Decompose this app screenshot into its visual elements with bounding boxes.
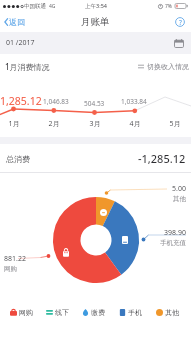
staticText: 手机	[128, 308, 142, 317]
button[interactable]: 其他	[149, 300, 186, 325]
button[interactable]: 缴费	[75, 300, 112, 325]
staticText: 总消费	[6, 154, 30, 164]
button[interactable]: 返回	[0, 14, 29, 30]
staticText: 网购	[19, 308, 33, 317]
staticText: 其他	[173, 195, 186, 203]
staticText: 2月	[48, 119, 60, 129]
staticText: ?	[179, 18, 182, 27]
staticText: 4G	[49, 3, 56, 10]
staticText: 中国联通	[24, 3, 46, 10]
staticText: 手机充值	[160, 239, 186, 247]
button[interactable]: 切换收入情况	[132, 58, 191, 75]
staticText: 1月	[8, 119, 20, 129]
staticText: 5月	[169, 119, 181, 129]
staticText: 7%	[165, 3, 173, 10]
staticText: 4月	[129, 119, 141, 129]
button[interactable]: Pick month	[167, 34, 191, 53]
staticText: 881.22	[4, 254, 26, 264]
staticText: 1,033.84	[121, 97, 147, 106]
staticText: 其他	[165, 308, 179, 317]
staticText: 3月	[89, 119, 101, 129]
staticText: 线下	[55, 308, 69, 317]
staticText: 01 /2017	[6, 38, 35, 48]
staticText: -1,285.12	[138, 151, 186, 166]
staticText: 月账单	[81, 16, 110, 28]
staticText: 398.90	[164, 228, 186, 238]
staticText: 缴费	[91, 308, 105, 317]
button[interactable]: 手机	[112, 300, 149, 325]
button[interactable]: 线下	[39, 300, 75, 325]
staticText: 网购	[4, 265, 17, 273]
staticText: 5.00	[172, 184, 186, 194]
staticText: 返回	[9, 17, 25, 27]
staticText: 504.53	[84, 99, 105, 108]
button[interactable]: 网购	[3, 300, 39, 325]
staticText: 1月消费情况	[5, 61, 50, 72]
staticText: 1,046.83	[43, 97, 69, 106]
staticText: 切换收入情况	[147, 62, 189, 71]
staticText: 上午3:54	[85, 2, 107, 10]
button[interactable]: Help	[169, 14, 191, 30]
staticText: 1,285.12	[0, 94, 42, 108]
